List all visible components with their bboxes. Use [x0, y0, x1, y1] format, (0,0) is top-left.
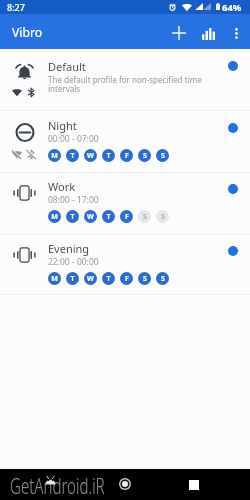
staticText: 8:27: [7, 1, 25, 13]
button[interactable]: T: [102, 272, 115, 285]
button[interactable]: Profile enabled: [228, 184, 238, 194]
button[interactable]: Night: [0, 111, 250, 172]
button[interactable]: Profile enabled: [228, 246, 238, 256]
staticText: W: [87, 274, 94, 284]
staticText: F: [125, 151, 129, 161]
staticText: Default: [48, 59, 86, 74]
staticText: S: [161, 274, 165, 284]
staticText: M: [51, 274, 58, 284]
button[interactable]: F: [120, 210, 133, 223]
button[interactable]: T: [66, 272, 79, 285]
button[interactable]: More options: [224, 21, 248, 45]
staticText: Work: [48, 179, 76, 194]
button[interactable]: S: [138, 272, 151, 285]
button[interactable]: M: [48, 149, 61, 162]
button[interactable]: S: [138, 149, 151, 162]
button[interactable]: S: [156, 210, 169, 223]
staticText: T: [70, 212, 75, 222]
staticText: T: [70, 151, 75, 161]
button[interactable]: M: [48, 210, 61, 223]
button[interactable]: T: [102, 210, 115, 223]
staticText: M: [51, 212, 58, 222]
staticText: S: [161, 212, 165, 222]
staticText: S: [143, 274, 147, 284]
button[interactable]: W: [84, 149, 97, 162]
button[interactable]: Default: [0, 49, 250, 110]
staticText: S: [143, 151, 147, 161]
button[interactable]: T: [102, 149, 115, 162]
staticText: The default profile for non-specified ti…: [48, 74, 210, 95]
button[interactable]: T: [66, 210, 79, 223]
staticText: T: [106, 274, 111, 284]
staticText: 00:00 - 07:00: [48, 133, 99, 145]
staticText: S: [143, 212, 147, 222]
staticText: Night: [48, 118, 77, 133]
staticText: Evening: [48, 241, 90, 256]
staticText: 64%: [222, 1, 242, 14]
staticText: Vibro: [12, 24, 43, 41]
button[interactable]: Work: [0, 172, 250, 234]
staticText: W: [87, 151, 94, 161]
button[interactable]: F: [120, 272, 133, 285]
button[interactable]: W: [84, 210, 97, 223]
staticText: M: [51, 151, 58, 161]
staticText: T: [106, 151, 111, 161]
button[interactable]: Evening: [0, 234, 250, 294]
button[interactable]: W: [84, 272, 97, 285]
staticText: S: [161, 151, 165, 161]
button[interactable]: F: [120, 149, 133, 162]
button[interactable]: S: [156, 149, 169, 162]
button[interactable]: S: [156, 272, 169, 285]
button[interactable]: Add profile: [165, 19, 193, 47]
staticText: F: [125, 212, 129, 222]
staticText: T: [106, 212, 111, 222]
staticText: GetAndroid.iR: [10, 471, 105, 500]
button[interactable]: Statistics: [194, 20, 222, 48]
staticText: W: [87, 212, 94, 222]
staticText: 08:00 - 17:00: [48, 194, 99, 206]
staticText: 22:00 - 00:00: [48, 256, 99, 268]
button[interactable]: S: [138, 210, 151, 223]
button[interactable]: Profile enabled: [228, 123, 238, 133]
button[interactable]: M: [48, 272, 61, 285]
button[interactable]: Profile enabled: [228, 61, 238, 71]
staticText: T: [70, 274, 75, 284]
button[interactable]: T: [66, 149, 79, 162]
staticText: F: [125, 274, 129, 284]
